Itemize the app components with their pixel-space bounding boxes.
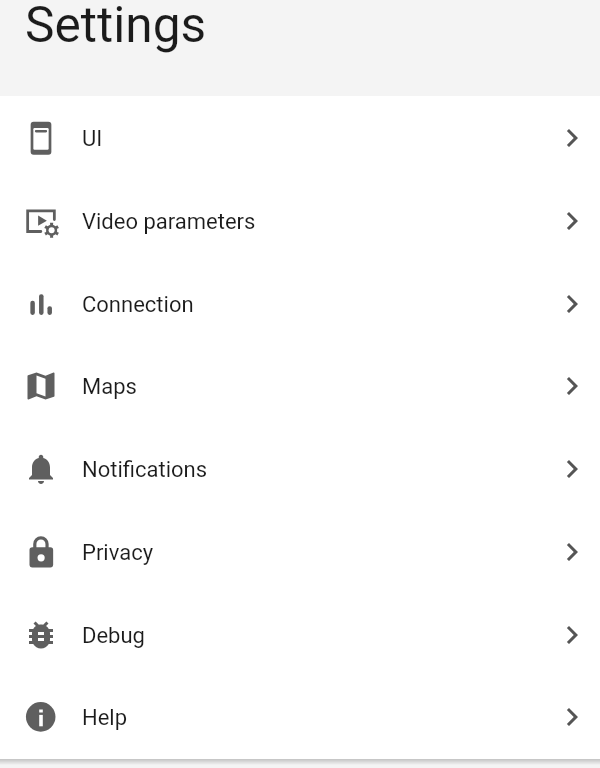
button[interactable]: UI	[0, 96, 600, 179]
staticText: Debug	[82, 623, 145, 649]
button[interactable]: Connection	[0, 262, 600, 345]
button[interactable]: Notifications	[0, 427, 600, 510]
button[interactable]: Video parameters	[0, 179, 600, 262]
button[interactable]: Maps	[0, 344, 600, 427]
staticText: UI	[82, 126, 103, 152]
staticText: Settings	[25, 0, 207, 54]
staticText: Help	[82, 705, 128, 731]
button[interactable]: Privacy	[0, 510, 600, 593]
button[interactable]: Debug	[0, 593, 600, 676]
staticText: Notifications	[82, 457, 208, 483]
staticText: Connection	[82, 292, 194, 318]
button[interactable]: Help	[0, 675, 600, 758]
staticText: Privacy	[82, 540, 154, 566]
staticText: Maps	[82, 374, 137, 400]
staticText: Video parameters	[82, 209, 256, 235]
